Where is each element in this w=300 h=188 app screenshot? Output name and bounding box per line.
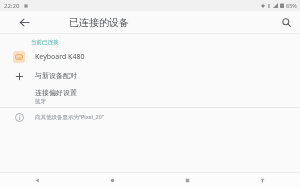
button[interactable]: Search [276,12,296,32]
button[interactable]: Hide keyboard [225,172,300,188]
staticText: 蓝牙 [35,98,46,105]
button[interactable]: 连接偏好设置 [0,85,300,107]
button[interactable]: 向其他设备显示为“Pixel_20” [0,108,300,126]
button[interactable]: Keyboard K480 [0,48,300,66]
staticText: 已连接的设备 [69,16,129,29]
button[interactable]: Home [75,172,150,188]
staticText: Keyboard K480 [35,52,85,62]
button[interactable]: Back [0,172,75,188]
button[interactable]: Back [13,11,35,33]
staticText: 向其他设备显示为“Pixel_20” [35,113,104,121]
staticText: 与新设备配对 [35,71,77,80]
button[interactable]: 与新设备配对 [0,66,300,85]
staticText: 22:20 [4,2,20,10]
button[interactable]: Recent apps [150,172,225,188]
staticText: 85% [286,2,297,9]
staticText: 当前已连接 [31,39,59,46]
staticText: 连接偏好设置 [35,88,77,97]
